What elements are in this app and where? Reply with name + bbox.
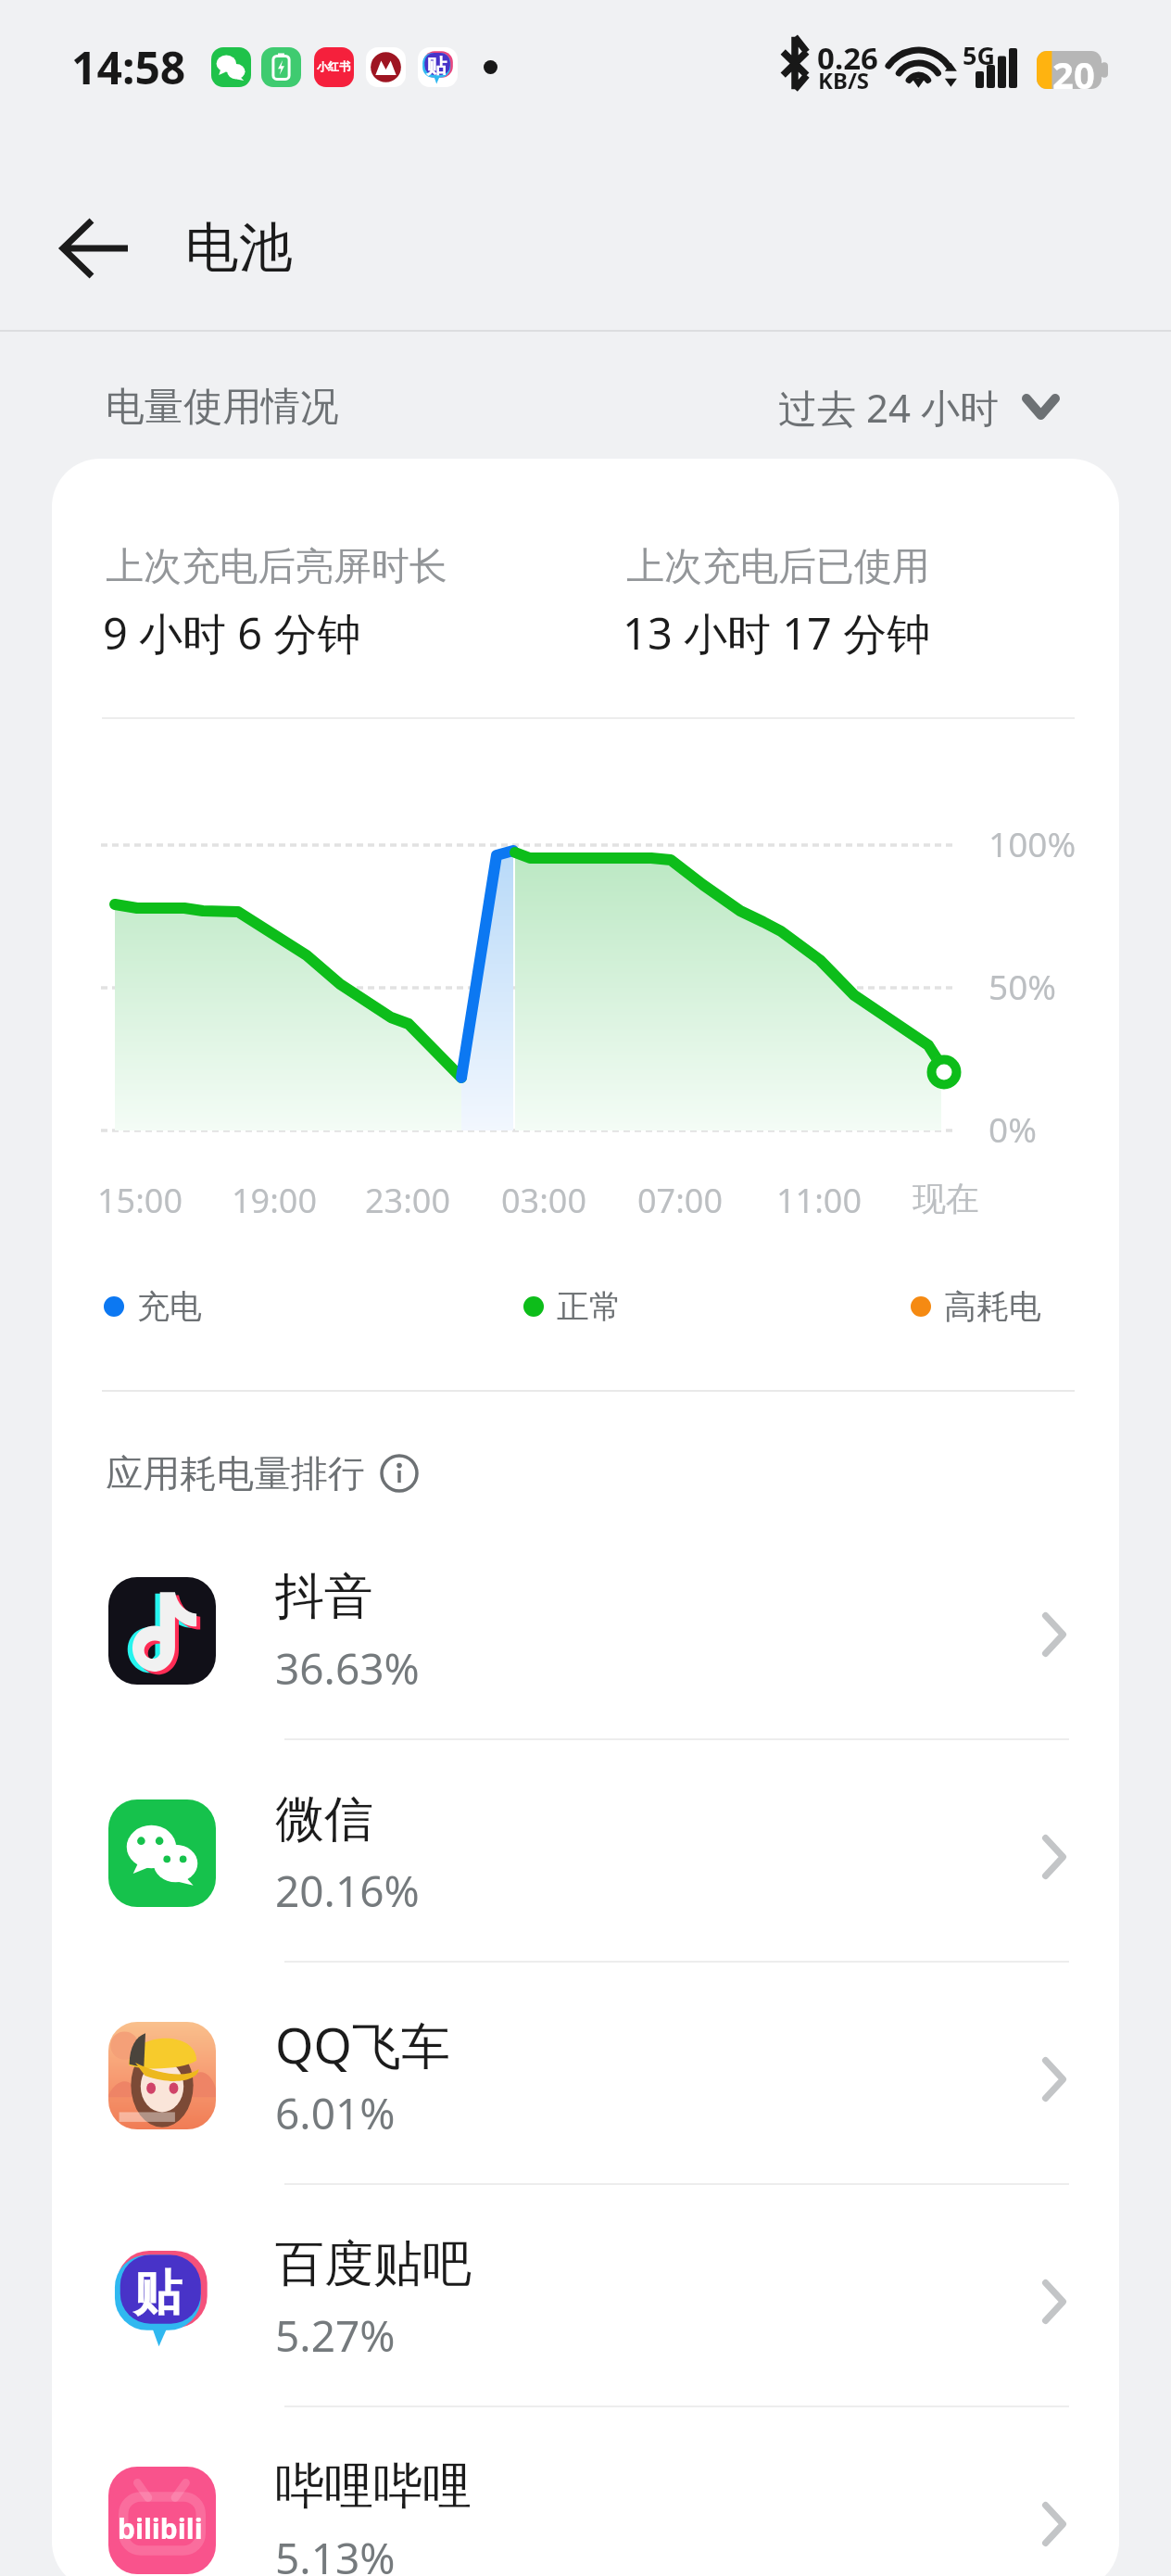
staticText: 正常: [557, 1286, 622, 1327]
staticText: 20.16%: [275, 1862, 420, 1920]
staticText: 14:58: [71, 37, 186, 97]
staticText: 充电: [137, 1286, 202, 1327]
staticText: 现在: [913, 1178, 979, 1219]
button[interactable]: Back: [40, 193, 151, 304]
staticText: 上次充电后亮屏时长: [106, 543, 447, 591]
staticText: 电池: [185, 214, 293, 282]
staticText: 哔哩哔哩: [275, 2456, 472, 2518]
staticText: 23:00: [365, 1178, 451, 1223]
staticText: 贴: [133, 2263, 182, 2324]
staticText: 19:00: [232, 1178, 318, 1223]
staticText: 0.26: [817, 37, 878, 79]
staticText: 5.13%: [275, 2529, 396, 2576]
staticText: 0%: [988, 1105, 1037, 1152]
staticText: 13 小时 17 分钟: [623, 603, 931, 663]
staticText: 5.27%: [275, 2306, 396, 2365]
button[interactable]: 抖音: [52, 1519, 1119, 1739]
staticText: 电量使用情况: [106, 383, 339, 432]
staticText: 20: [1052, 49, 1095, 99]
staticText: 百度贴吧: [275, 2233, 472, 2295]
staticText: 应用耗电量排行: [106, 1450, 365, 1496]
staticText: 9 小时 6 分钟: [103, 603, 361, 663]
staticText: 5G: [963, 38, 995, 72]
staticText: 100%: [988, 820, 1077, 866]
button[interactable]: 贴: [52, 2186, 1119, 2406]
staticText: 抖音: [275, 1566, 373, 1628]
staticText: KB/S: [818, 65, 870, 95]
staticText: 11:00: [776, 1178, 863, 1223]
staticText: bilibili: [118, 2509, 203, 2547]
staticText: 50%: [988, 963, 1057, 1009]
staticText: 上次充电后已使用: [626, 543, 930, 591]
staticText: 6.01%: [275, 2084, 396, 2142]
staticText: 高耗电: [944, 1286, 1041, 1327]
staticText: 贴: [426, 54, 447, 80]
button[interactable]: QQ飞车: [52, 1964, 1119, 2184]
button[interactable]: 过去 24 小时: [778, 368, 1060, 446]
staticText: 微信: [275, 1788, 373, 1850]
button[interactable]: 应用耗电量排行说明: [106, 1440, 419, 1507]
staticText: 07:00: [637, 1178, 724, 1223]
staticText: 小红书: [317, 59, 350, 73]
staticText: 15:00: [97, 1178, 183, 1223]
staticText: 过去 24 小时: [778, 381, 999, 434]
staticText: QQ飞车: [275, 2011, 450, 2077]
button[interactable]: bilibili: [52, 2408, 1119, 2576]
staticText: 03:00: [501, 1178, 587, 1223]
staticText: 36.63%: [275, 1639, 420, 1698]
button[interactable]: 微信: [52, 1741, 1119, 1962]
